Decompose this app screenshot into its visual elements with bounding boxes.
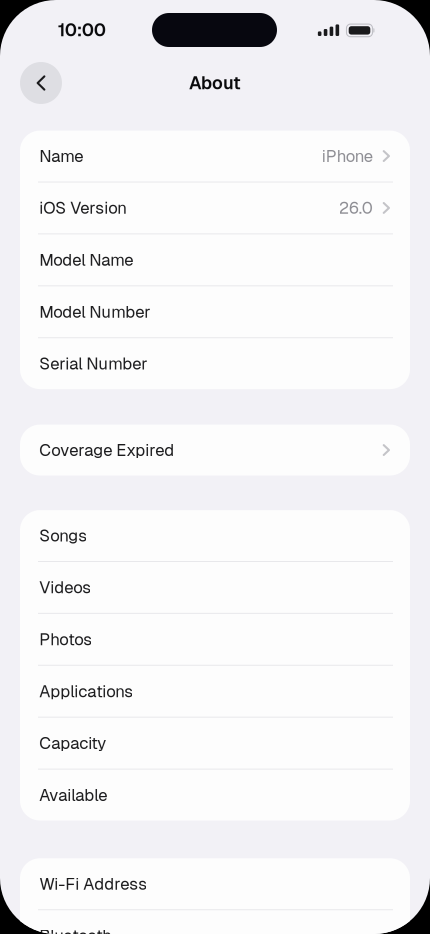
button[interactable]: Name <box>20 131 410 181</box>
staticText: About <box>189 71 241 95</box>
staticText: 26.0 <box>339 197 373 219</box>
staticText: Name <box>39 145 83 167</box>
button[interactable]: Applications <box>20 666 410 717</box>
staticText: Model Name <box>39 249 133 271</box>
staticText: Model Number <box>39 301 150 323</box>
staticText: Bluetooth <box>39 925 112 934</box>
staticText: Serial Number <box>39 353 147 374</box>
button[interactable]: Model Number <box>20 286 410 337</box>
button[interactable]: Songs <box>20 510 410 561</box>
staticText: Songs <box>39 525 87 546</box>
staticText: Videos <box>39 577 91 598</box>
staticText: Wi-Fi Address <box>39 873 147 895</box>
button[interactable]: Capacity <box>20 718 410 769</box>
button[interactable]: Serial Number <box>20 338 410 389</box>
button[interactable]: Photos <box>20 614 410 665</box>
staticText: Photos <box>39 628 92 650</box>
button[interactable]: Wi-Fi Address <box>20 858 410 909</box>
staticText: iPhone <box>322 145 373 167</box>
button[interactable]: Back <box>20 62 62 104</box>
button[interactable]: Model Name <box>20 234 410 285</box>
staticText: Available <box>39 784 107 806</box>
button[interactable]: iOS Version <box>20 182 410 233</box>
staticText: Capacity <box>39 732 106 754</box>
staticText: Coverage Expired <box>39 439 174 461</box>
staticText: Applications <box>39 680 133 702</box>
staticText: 10:00 <box>58 18 106 42</box>
button[interactable]: Available <box>20 770 410 820</box>
button[interactable]: Coverage Expired <box>20 425 410 475</box>
staticText: iOS Version <box>39 197 127 219</box>
button[interactable]: Bluetooth <box>20 910 410 934</box>
button[interactable]: Videos <box>20 562 410 613</box>
